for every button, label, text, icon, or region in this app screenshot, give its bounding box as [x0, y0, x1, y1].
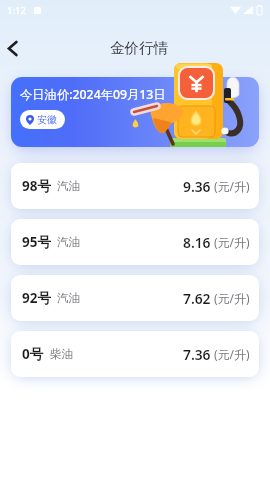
staticText: 8.16 [183, 233, 211, 252]
staticText: 7.36 [183, 345, 211, 364]
button[interactable]: 98号 [11, 163, 259, 209]
staticText: 0号 [22, 345, 44, 363]
staticText: 汽油 [57, 179, 80, 193]
staticText: (元/升) [214, 178, 250, 194]
staticText: 92号 [22, 289, 51, 307]
button[interactable]: 安徽 [20, 110, 65, 129]
button[interactable]: 95号 [11, 219, 259, 265]
staticText: 柴油 [50, 347, 73, 361]
staticText: (元/升) [214, 234, 250, 250]
staticText: 汽油 [57, 291, 80, 305]
staticText: 9.36 [183, 177, 211, 196]
staticText: 95号 [22, 233, 51, 251]
button[interactable]: 0号 [11, 331, 259, 377]
button[interactable]: Back [0, 30, 30, 66]
staticText: 1:12 [7, 4, 26, 17]
staticText: 汽油 [57, 235, 80, 249]
staticText: 98号 [22, 177, 51, 195]
staticText: 金价行情 [110, 39, 168, 57]
staticText: 安徽 [37, 113, 57, 126]
staticText: 今日油价:2024年09月13日 [20, 86, 166, 103]
button[interactable]: 92号 [11, 275, 259, 321]
staticText: (元/升) [214, 290, 250, 306]
staticText: 7.62 [183, 289, 211, 308]
button[interactable]: 今日油价:2024年09月13日 [11, 77, 259, 147]
staticText: (元/升) [214, 346, 250, 362]
